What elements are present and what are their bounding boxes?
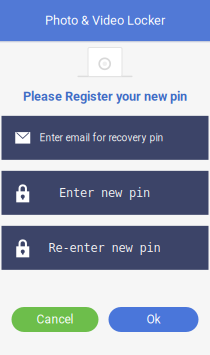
staticText: Re-enter new pin — [48, 241, 160, 255]
staticText: Enter email for recovery pin — [39, 132, 163, 144]
staticText: Ok — [146, 312, 160, 327]
button[interactable]: Ok — [108, 307, 198, 332]
staticText: Enter new pin — [59, 186, 150, 200]
staticText: Please Register your new pin — [23, 89, 187, 104]
staticText: Cancel — [36, 312, 73, 327]
button[interactable]: Enter new pin — [0, 171, 210, 215]
button[interactable]: Re-enter new pin — [0, 226, 210, 270]
staticText: Photo & Video Locker — [45, 13, 165, 28]
button[interactable]: Enter email for recovery pin — [0, 116, 210, 160]
button[interactable]: Cancel — [11, 307, 98, 332]
